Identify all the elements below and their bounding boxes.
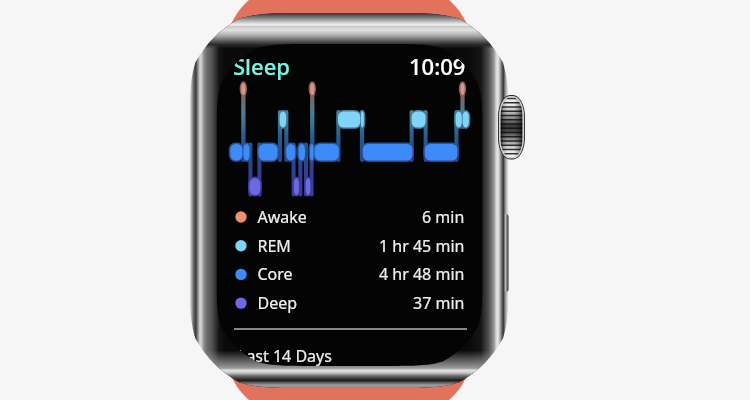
button[interactable]: Sleep watch screen [0, 0, 750, 400]
